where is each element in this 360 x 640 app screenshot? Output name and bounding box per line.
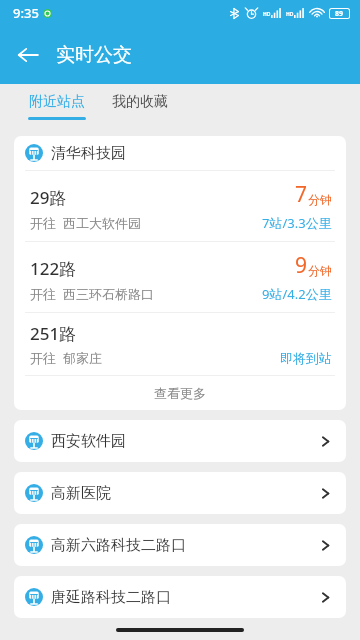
staticText: 高新六路科技二路口 [51,536,186,555]
staticText: 89 [335,9,344,18]
staticText: 我的收藏 [112,93,168,111]
staticText: 实时公交 [56,43,132,67]
button[interactable]: 查看更多 [14,376,346,410]
button[interactable]: 122路 [14,242,346,312]
staticText: 9站/4.2公里 [262,285,332,303]
staticText: 29路 [30,186,67,209]
staticText: 9 [295,251,308,280]
staticText: 分钟 [308,263,332,278]
staticText: 西安软件园 [51,432,126,451]
staticText: 西三环石桥路口 [63,286,154,302]
staticText: 7 [295,180,308,209]
button[interactable]: 西安软件园 [14,420,346,462]
button[interactable]: 29路 [14,171,346,241]
staticText: 开往 [30,286,56,302]
staticText: 西工大软件园 [63,215,141,231]
staticText: 唐延路科技二路口 [51,588,171,607]
button[interactable]: Back [0,26,56,84]
staticText: 即将到站 [280,350,332,366]
staticText: 9:35 [13,4,39,22]
staticText: 郁家庄 [63,350,102,366]
button[interactable]: 251路 [14,313,346,375]
staticText: 7站/3.3公里 [262,214,332,232]
staticText: HD [263,11,271,18]
staticText: 清华科技园 [51,144,126,163]
staticText: HD [286,11,294,18]
button[interactable]: 唐延路科技二路口 [14,576,346,618]
button[interactable]: 我的收藏 [110,89,170,124]
button[interactable]: 清华科技园 [14,136,346,170]
staticText: 251路 [30,322,77,345]
staticText: 查看更多 [154,385,206,401]
staticText: 高新医院 [51,484,111,503]
button[interactable]: 高新医院 [14,472,346,514]
staticText: 附近站点 [29,93,85,111]
button[interactable]: 附近站点 [26,93,88,120]
staticText: 122路 [30,257,77,280]
staticText: 分钟 [308,192,332,207]
staticText: 开往 [30,350,56,366]
staticText: 开往 [30,215,56,231]
button[interactable]: 高新六路科技二路口 [14,524,346,566]
